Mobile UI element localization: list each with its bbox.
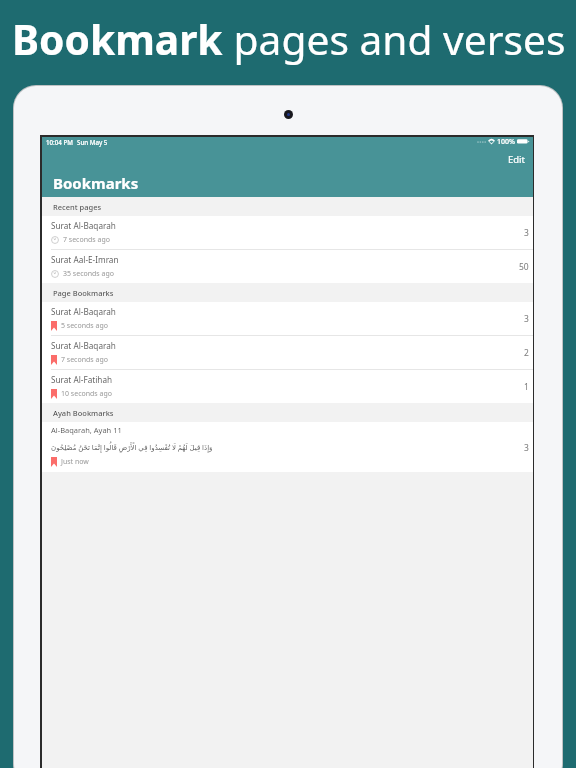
staticText: 5 seconds ago [61, 321, 108, 331]
staticText: Ayah Bookmarks [53, 408, 114, 418]
staticText: 7 seconds ago [63, 235, 110, 245]
staticText: Surat Al-Fatihah [51, 374, 113, 385]
staticText: 100% [497, 137, 515, 146]
staticText: 3 [524, 313, 529, 325]
staticText: 3 [524, 227, 529, 239]
staticText: 10:04 PM [46, 138, 73, 146]
staticText: وَإِذَا قِيلَ لَهُمْ لَا تُفْسِدُوا فِي … [51, 443, 213, 453]
button[interactable]: Surat Aal-E-Imran [42, 250, 533, 283]
other: Wi-Fi [488, 139, 495, 145]
button[interactable]: Surat Al-Baqarah [42, 336, 533, 369]
staticText: 35 seconds ago [63, 269, 114, 279]
staticText: Surat Al-Baqarah [51, 220, 116, 231]
staticText: Surat Aal-E-Imran [51, 254, 119, 265]
button[interactable]: Surat Al-Fatihah [42, 370, 533, 403]
staticText: 3 [524, 442, 529, 454]
staticText: pages and verses [223, 11, 566, 66]
button[interactable]: Surat Al-Baqarah [42, 216, 533, 249]
other: Battery 100 percent [517, 138, 529, 145]
button[interactable]: Al-Baqarah, Ayah 11 [42, 422, 533, 472]
staticText: Surat Al-Baqarah [51, 340, 116, 351]
staticText: 10 seconds ago [61, 389, 112, 399]
staticText: 2 [524, 347, 529, 359]
staticText: Page Bookmarks [53, 288, 114, 298]
staticText: Surat Al-Baqarah [51, 306, 116, 317]
staticText: Sun May 5 [77, 138, 108, 146]
button[interactable]: Edit [498, 149, 533, 170]
staticText: Recent pages [53, 202, 102, 212]
staticText: Al-Baqarah, Ayah 11 [51, 425, 122, 435]
staticText: Edit [508, 153, 526, 166]
other: Cellular signal [477, 140, 485, 144]
button[interactable]: Surat Al-Baqarah [42, 302, 533, 335]
staticText: 50 [519, 261, 529, 273]
staticText: Bookmark [12, 11, 223, 66]
staticText: 1 [524, 381, 529, 393]
staticText: Just now [61, 457, 89, 467]
staticText: 7 seconds ago [61, 355, 108, 365]
staticText: Bookmarks [53, 173, 139, 193]
